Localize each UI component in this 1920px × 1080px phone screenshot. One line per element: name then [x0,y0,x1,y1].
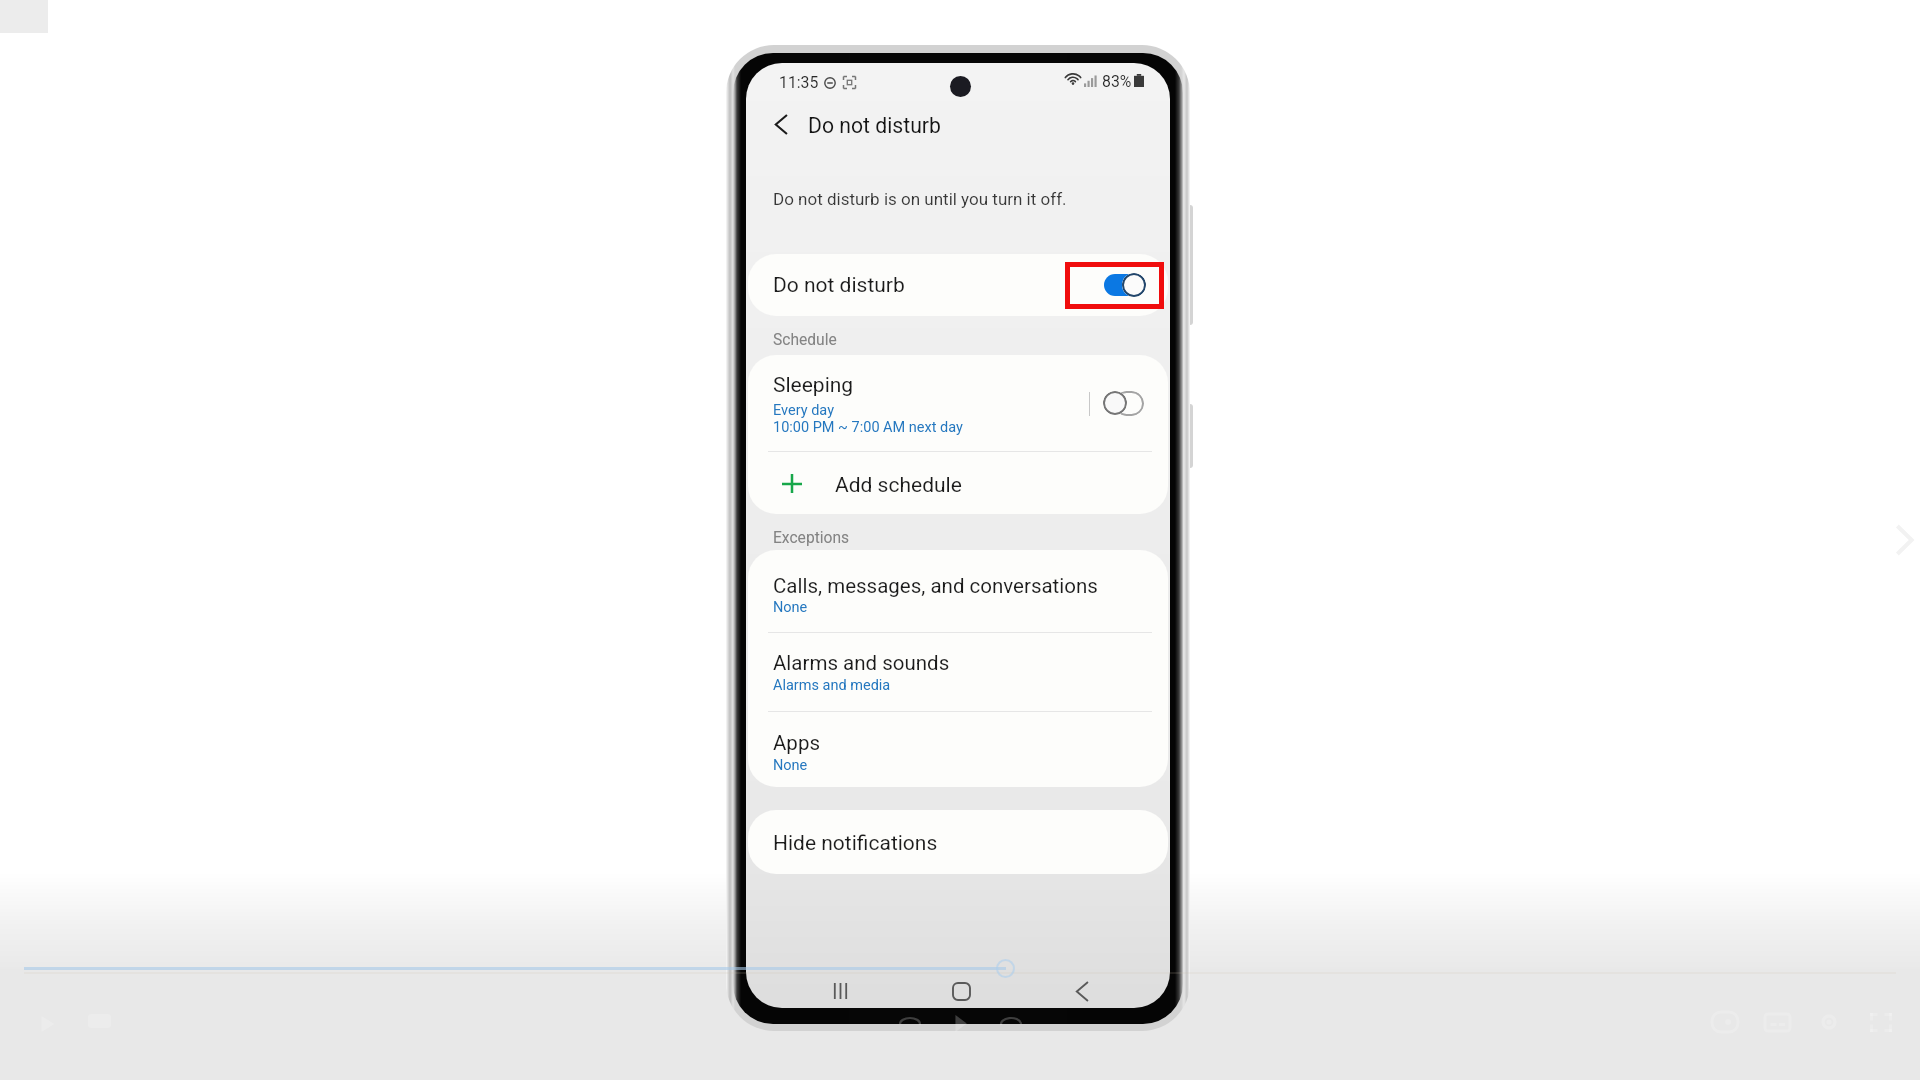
button[interactable]: Home [939,969,983,1008]
staticText: 10:00 PM ~ 7:00 AM next day [773,419,963,436]
staticText: Alarms and sounds [773,651,950,675]
staticText: Apps [773,731,820,755]
staticText: Sleeping [773,373,854,398]
button[interactable]: Sleeping schedule toggle [1103,391,1144,416]
button[interactable]: Alarms and sounds [748,632,1168,711]
button[interactable]: Apps [748,711,1168,787]
staticText: 83% [1102,72,1132,91]
button[interactable]: Back [1060,969,1104,1008]
staticText: Calls, messages, and conversations [773,574,1098,598]
staticText: Do not disturb [773,273,905,298]
button[interactable]: Navigate up [765,108,797,140]
staticText: Alarms and media [773,677,891,694]
staticText: Schedule [773,331,837,349]
staticText: 11:35 [779,73,819,92]
button[interactable]: Sleeping [748,355,1168,451]
staticText: None [773,757,808,774]
button[interactable]: Hide notifications [748,810,1168,874]
button[interactable]: Calls, messages, and conversations [748,550,1168,632]
staticText: None [773,599,808,616]
staticText: Exceptions [773,529,850,547]
button[interactable]: Do not disturb toggle [1065,262,1164,309]
staticText: Do not disturb is on until you turn it o… [773,189,1067,209]
staticText: Every day [773,402,834,419]
staticText: Hide notifications [773,831,938,856]
button[interactable]: Add schedule [748,452,1168,514]
staticText: Add schedule [835,473,962,498]
button[interactable]: Recent apps [818,969,862,1008]
button[interactable]: Do not disturb [748,254,1168,316]
staticText: Do not disturb [808,113,941,138]
